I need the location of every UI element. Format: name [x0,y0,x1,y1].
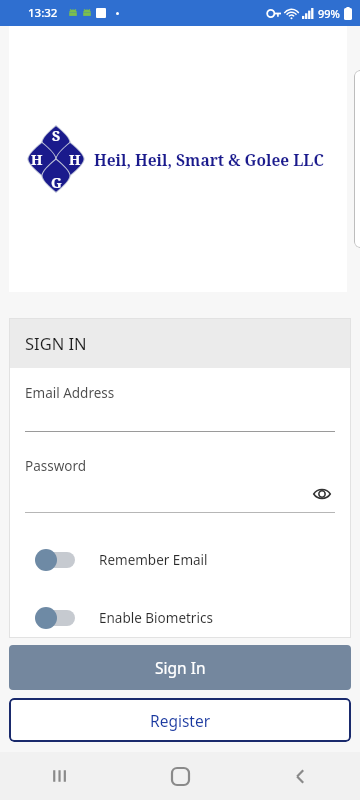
staticText: Register [150,710,211,731]
staticText: G [51,173,62,192]
staticText: S [52,126,61,145]
staticText: Heil, Heil, Smart & Golee LLC [94,149,324,170]
staticText: H [31,150,43,169]
button[interactable]: Sign In [9,645,351,690]
button[interactable]: Back [240,752,360,800]
staticText: 13:32 [28,5,58,21]
button[interactable]: Show password [309,481,335,507]
staticText: Password [25,457,87,475]
button[interactable]: Remember Email [9,543,351,577]
staticText: Remember Email [99,551,208,569]
button[interactable]: Home [120,752,240,800]
staticText: Sign In [155,657,206,678]
staticText: Enable Biometrics [99,609,213,627]
staticText: 99% [318,6,340,21]
button[interactable]: Register [9,698,351,742]
button[interactable]: Recent apps [0,752,120,800]
staticText: SIGN IN [25,332,87,354]
staticText: Email Address [25,384,115,402]
button[interactable]: Enable Biometrics [9,601,351,635]
staticText: H [69,150,81,169]
